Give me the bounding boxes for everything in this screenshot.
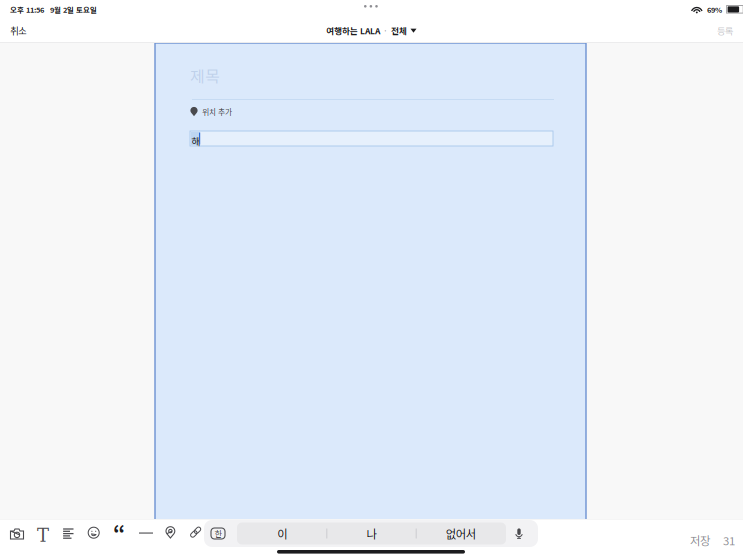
- staticText: 한: [214, 528, 221, 539]
- button[interactable]: 한글 키보드: [208, 525, 228, 541]
- button[interactable]: 등록: [707, 18, 733, 43]
- button[interactable]: 인용구: [109, 521, 131, 543]
- staticText: T: [37, 525, 49, 546]
- button[interactable]: 없어서: [417, 522, 505, 544]
- staticText: 69%: [707, 4, 722, 15]
- button[interactable]: 나: [327, 522, 416, 544]
- staticText: 오후 11:56 9월 2일 토요일: [10, 4, 97, 15]
- button[interactable]: 이: [238, 522, 326, 544]
- staticText: 해: [191, 134, 200, 148]
- button[interactable]: 취소: [10, 18, 44, 43]
- button[interactable]: 음성 입력: [508, 524, 530, 544]
- button[interactable]: 텍스트: [33, 525, 55, 547]
- staticText: 위치 추가: [202, 106, 232, 117]
- staticText: 전체: [391, 24, 407, 37]
- staticText: 여행하는 LALA: [326, 24, 380, 37]
- staticText: 31: [723, 532, 735, 548]
- staticText: 이: [277, 525, 287, 542]
- staticText: 취소: [10, 24, 26, 37]
- button[interactable]: 링크: [185, 526, 207, 548]
- button[interactable]: 장소: [161, 526, 183, 548]
- button[interactable]: 정렬: [58, 528, 80, 550]
- staticText: 등록: [717, 24, 733, 37]
- staticText: 제목: [190, 64, 220, 87]
- staticText: ·: [383, 24, 388, 37]
- button[interactable]: 스티커: [83, 526, 105, 548]
- button[interactable]: 구분선: [135, 532, 157, 554]
- staticText: 저장: [690, 532, 710, 548]
- staticText: “: [113, 517, 125, 547]
- button[interactable]: 사진: [6, 527, 28, 549]
- staticText: 없어서: [446, 525, 476, 542]
- button[interactable]: 저장: [690, 532, 710, 548]
- button[interactable]: 전체: [391, 24, 417, 37]
- staticText: 나: [366, 525, 376, 542]
